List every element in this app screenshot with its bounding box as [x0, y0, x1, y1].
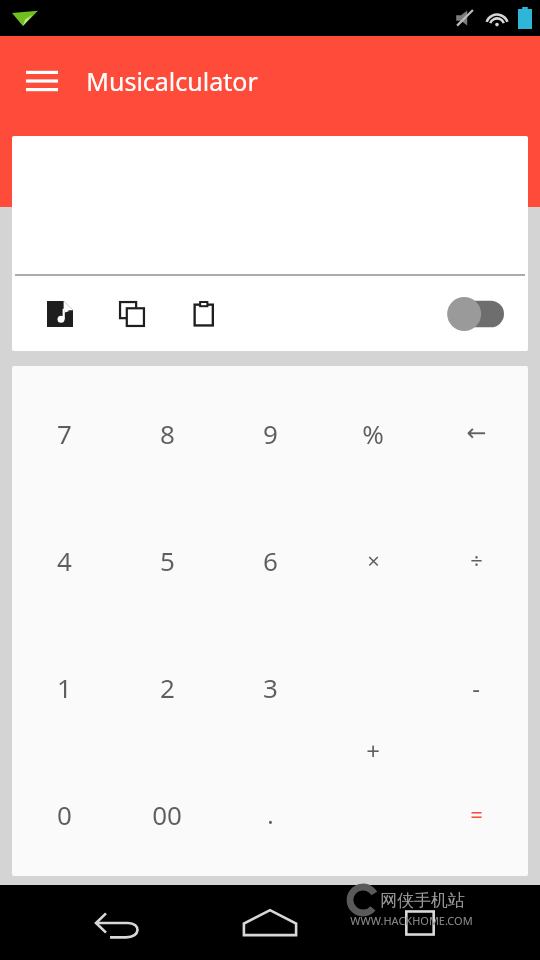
- button[interactable]: 1: [20, 655, 108, 719]
- button[interactable]: %: [329, 401, 417, 465]
- staticText: 00: [152, 797, 182, 832]
- staticText: 1: [57, 670, 72, 705]
- button[interactable]: 6: [226, 528, 314, 592]
- button[interactable]: Copy: [104, 286, 160, 342]
- staticText: 6: [263, 543, 278, 578]
- button[interactable]: .: [226, 782, 314, 846]
- staticText: =: [470, 799, 483, 829]
- staticText: ←: [466, 419, 487, 447]
- staticText: 3: [263, 670, 278, 705]
- button[interactable]: 00: [123, 782, 211, 846]
- staticText: 9: [263, 416, 278, 451]
- staticText: WWW.HACKHOME.COM: [350, 913, 473, 928]
- button[interactable]: ÷: [432, 528, 520, 592]
- staticText: 0: [57, 797, 72, 832]
- staticText: 4: [57, 543, 72, 578]
- button[interactable]: Toggle sound: [446, 291, 510, 337]
- button[interactable]: Home: [230, 885, 310, 960]
- button[interactable]: Recent apps: [380, 885, 460, 960]
- staticText: -: [472, 671, 480, 704]
- button[interactable]: 2: [123, 655, 211, 719]
- button[interactable]: 4: [20, 528, 108, 592]
- button[interactable]: -: [432, 655, 520, 719]
- staticText: ÷: [470, 545, 483, 575]
- button[interactable]: Paste: [176, 286, 232, 342]
- button[interactable]: Open navigation menu: [18, 57, 66, 105]
- button[interactable]: =: [432, 782, 520, 846]
- button[interactable]: 3: [226, 655, 314, 719]
- staticText: Musicalculator: [86, 64, 258, 98]
- button[interactable]: Back: [80, 885, 160, 960]
- staticText: ×: [367, 545, 380, 575]
- button[interactable]: 0: [20, 782, 108, 846]
- button[interactable]: 8: [123, 401, 211, 465]
- staticText: 2: [160, 670, 175, 705]
- button[interactable]: 9: [226, 401, 314, 465]
- button[interactable]: ←: [432, 401, 520, 465]
- staticText: .: [267, 798, 274, 831]
- button[interactable]: +: [329, 718, 417, 782]
- staticText: 5: [160, 543, 175, 578]
- staticText: 7: [57, 416, 72, 451]
- button[interactable]: Play as music: [32, 286, 88, 342]
- staticText: %: [362, 416, 384, 451]
- staticText: +: [366, 734, 380, 767]
- button[interactable]: 5: [123, 528, 211, 592]
- button[interactable]: ×: [329, 528, 417, 592]
- staticText: 8: [160, 416, 175, 451]
- staticText: 网侠手机站: [380, 890, 465, 911]
- button[interactable]: 7: [20, 401, 108, 465]
